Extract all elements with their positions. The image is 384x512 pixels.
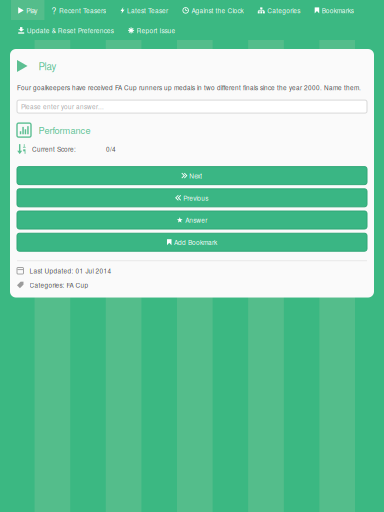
button[interactable]: Answer <box>17 211 367 229</box>
staticText: Categories: FA Cup <box>29 280 88 290</box>
button[interactable]: Categories <box>251 0 307 20</box>
staticText: Next <box>189 171 202 180</box>
button[interactable]: Previous <box>17 189 367 207</box>
staticText: 0/4 <box>106 144 116 154</box>
staticText: Add Bookmark <box>174 237 217 247</box>
staticText: Update & Reset Preferences <box>27 26 114 35</box>
staticText: Recent Teasers <box>59 6 106 15</box>
staticText: Bookmarks <box>322 6 354 15</box>
staticText: Categories <box>267 6 300 15</box>
staticText: Answer <box>185 215 207 225</box>
button[interactable]: Report Issue <box>121 20 183 40</box>
staticText: Latest Teaser <box>127 6 168 15</box>
staticText: Play <box>38 59 56 73</box>
button[interactable]: Latest Teaser <box>113 0 175 20</box>
staticText: Four goalkeepers have received FA Cup ru… <box>17 83 361 92</box>
staticText: Play <box>26 6 37 15</box>
button[interactable]: Bookmarks <box>307 0 361 20</box>
staticText: Performance <box>38 123 90 137</box>
button[interactable]: Next <box>17 167 367 185</box>
button[interactable]: Play <box>11 0 44 20</box>
button[interactable]: Against the Clock <box>175 0 251 20</box>
staticText: Previous <box>183 193 208 202</box>
staticText: Current Score: <box>32 144 76 154</box>
staticText: Please enter your answer... <box>21 102 104 111</box>
staticText: Last Updated: 01 Jul 2014 <box>29 266 111 275</box>
button[interactable]: Add Bookmark <box>17 233 367 251</box>
button[interactable]: ? <box>44 0 113 20</box>
staticText: Against the Clock <box>191 6 243 15</box>
staticText: ? <box>52 4 57 17</box>
staticText: Report Issue <box>137 26 176 35</box>
button[interactable]: Update & Reset Preferences <box>11 20 121 40</box>
